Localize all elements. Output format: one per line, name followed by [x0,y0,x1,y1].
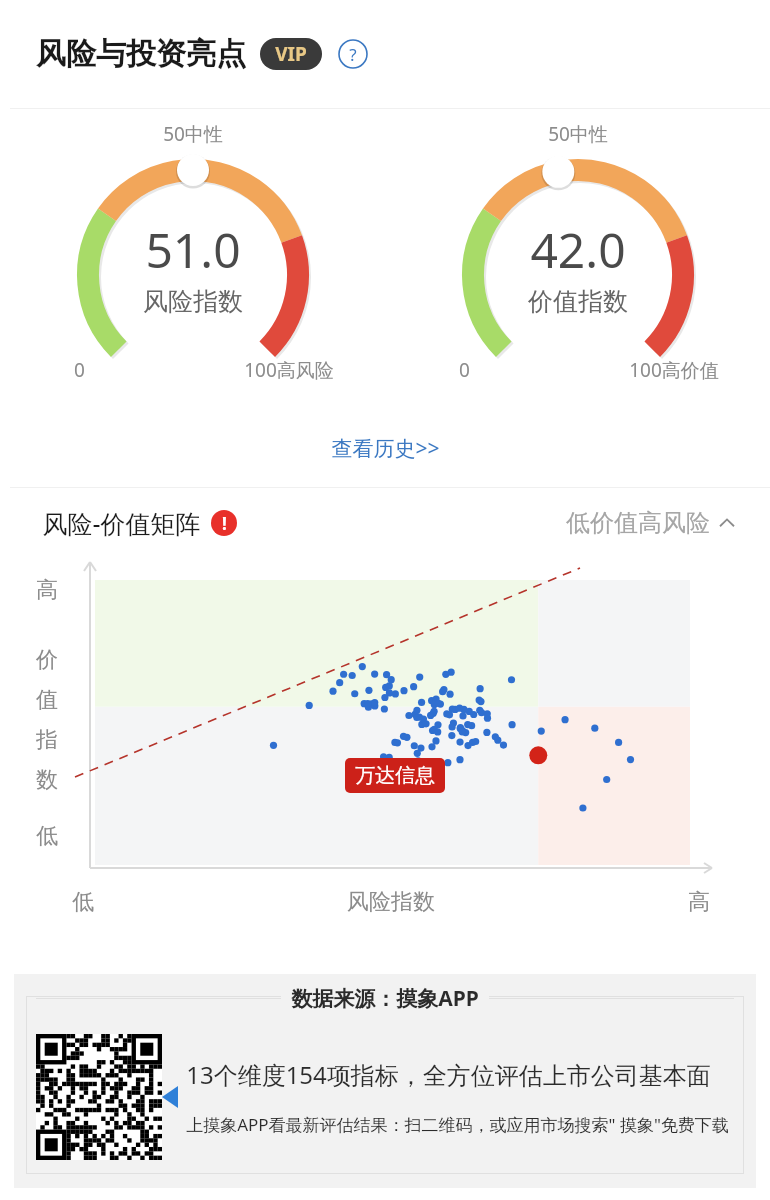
staticText: 风险指数 [143,286,243,317]
staticText: 风险与投资亮点 [36,35,246,73]
button[interactable]: 万达信息 [355,763,435,788]
staticText: ! [222,512,227,535]
staticText: 指 [36,726,58,754]
staticText: 上摸象APP看最新评估结果：扫二维码，或应用市场搜索" 摸象"免费下载 [186,1113,729,1136]
staticText: 价 [36,646,58,674]
staticText: 风险指数 [347,888,435,916]
staticText: 风险-价值矩阵 [42,506,201,540]
staticText: 0 [74,357,85,383]
staticText: 50中性 [548,121,608,147]
button[interactable]: VIP [260,38,322,70]
button[interactable]: Warning [211,510,237,536]
button[interactable]: 查看历史>> [323,426,448,471]
staticText: 低 [36,822,58,850]
staticText: 51.0 [145,217,241,282]
staticText: ? [349,43,357,66]
staticText: 数 [36,766,58,794]
staticText: 高 [36,576,58,604]
staticText: 0 [459,357,470,383]
staticText: 50中性 [163,121,223,147]
button[interactable]: 低价值高风险 [566,508,736,538]
staticText: 42.0 [530,217,626,282]
staticText: VIP [275,41,307,67]
staticText: 值 [36,686,58,714]
staticText: 数据来源：摸象APP [291,984,479,1013]
staticText: 万达信息 [355,763,435,788]
staticText: 低 [72,888,94,916]
staticText: 查看历史>> [331,434,440,463]
button[interactable]: Help [338,39,368,69]
staticText: 高 [688,888,710,916]
staticText: 13个维度154项指标，全方位评估上市公司基本面 [186,1058,711,1091]
staticText: 100高风险 [244,357,334,383]
staticText: 100高价值 [629,357,719,383]
staticText: 价值指数 [528,286,628,317]
staticText: 低价值高风险 [566,508,710,538]
